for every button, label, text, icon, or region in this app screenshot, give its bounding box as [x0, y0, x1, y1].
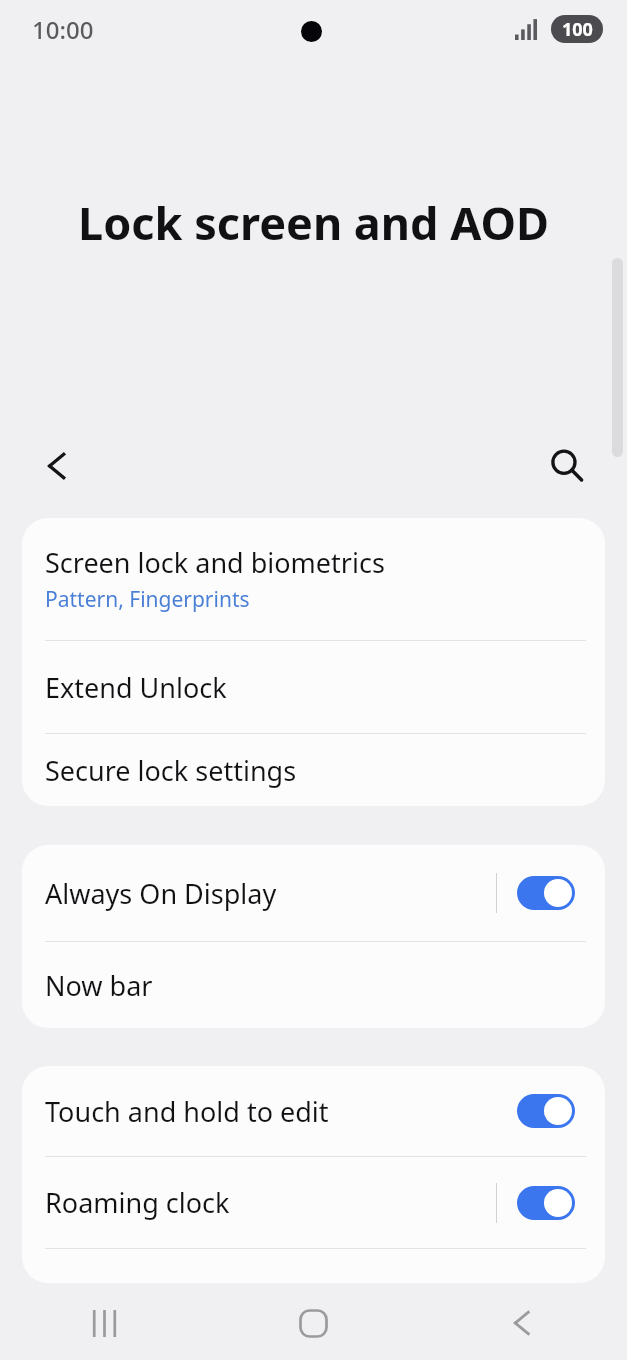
staticText: Roaming clock [45, 1184, 496, 1221]
button[interactable]: Roaming clock, on [517, 1186, 575, 1220]
button[interactable]: Always On Display, on [517, 876, 575, 910]
staticText: Screen lock and biometrics [45, 544, 385, 581]
button[interactable]: Extend Unlock [22, 641, 605, 733]
button[interactable]: Touch and hold to edit, on [517, 1094, 575, 1128]
button[interactable]: Search [536, 435, 598, 497]
button[interactable]: Now bar [22, 942, 605, 1028]
staticText: Lock screen and AOD [78, 192, 549, 253]
staticText: Always On Display [45, 875, 496, 912]
staticText: Touch and hold to edit [45, 1093, 496, 1130]
button[interactable]: Screen lock and biometrics [22, 518, 605, 640]
staticText: Secure lock settings [45, 752, 297, 789]
button[interactable]: Home [209, 1286, 418, 1360]
button[interactable]: Always On Display [22, 845, 605, 941]
button[interactable]: Roaming clock [22, 1157, 605, 1248]
staticText: Extend Unlock [45, 669, 227, 706]
staticText: Pattern, Fingerprints [45, 585, 250, 614]
staticText: 10:00 [32, 13, 94, 46]
staticText: 100 [562, 17, 593, 42]
button[interactable]: Back [418, 1286, 627, 1360]
button[interactable]: Touch and hold to edit [22, 1066, 605, 1156]
staticText: Now bar [45, 967, 153, 1004]
button[interactable]: Secure lock settings [22, 734, 605, 806]
button[interactable]: Recent apps [0, 1286, 209, 1360]
button[interactable]: Navigate up [27, 435, 89, 497]
